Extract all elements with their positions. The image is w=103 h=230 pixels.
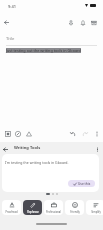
staticText: Title bbox=[6, 36, 15, 42]
staticText: Proofread bbox=[5, 210, 18, 214]
staticText: Professional bbox=[46, 210, 61, 214]
staticText: 9:41 bbox=[8, 4, 16, 9]
staticText: Friendly bbox=[70, 210, 80, 214]
button[interactable]: Back bbox=[0, 144, 10, 154]
staticText: Use this bbox=[78, 182, 91, 186]
button[interactable]: Use this bbox=[68, 180, 95, 187]
button[interactable]: Keyboard bbox=[2, 128, 13, 139]
staticText: Rephrase bbox=[27, 210, 39, 214]
button[interactable]: Simplify bbox=[86, 200, 103, 215]
button[interactable]: More options bbox=[92, 144, 102, 154]
button[interactable]: Redo bbox=[79, 128, 90, 139]
button[interactable]: More options bbox=[91, 128, 102, 139]
button[interactable]: Professional bbox=[44, 200, 63, 215]
button[interactable]: I'm testing the writing tools in Gboard. bbox=[2, 154, 99, 192]
button[interactable]: Archive bbox=[88, 17, 99, 28]
button[interactable]: Pin bbox=[65, 17, 76, 28]
button[interactable]: Proofread bbox=[2, 200, 21, 215]
button[interactable]: Reminder bbox=[77, 17, 88, 28]
button[interactable]: Friendly bbox=[65, 200, 84, 215]
button[interactable]: Draw bbox=[12, 128, 23, 139]
button[interactable]: Back bbox=[1, 17, 12, 28]
staticText: Simplify bbox=[91, 210, 101, 214]
button[interactable]: Undo bbox=[67, 128, 78, 139]
staticText: Just testing out the writing tools in Gb… bbox=[6, 48, 81, 53]
button[interactable]: Text format bbox=[23, 128, 34, 139]
button[interactable]: Rephrase bbox=[23, 200, 42, 215]
staticText: Writing Tools bbox=[14, 145, 41, 150]
staticText: I'm testing the writing tools in Gboard. bbox=[5, 160, 69, 165]
